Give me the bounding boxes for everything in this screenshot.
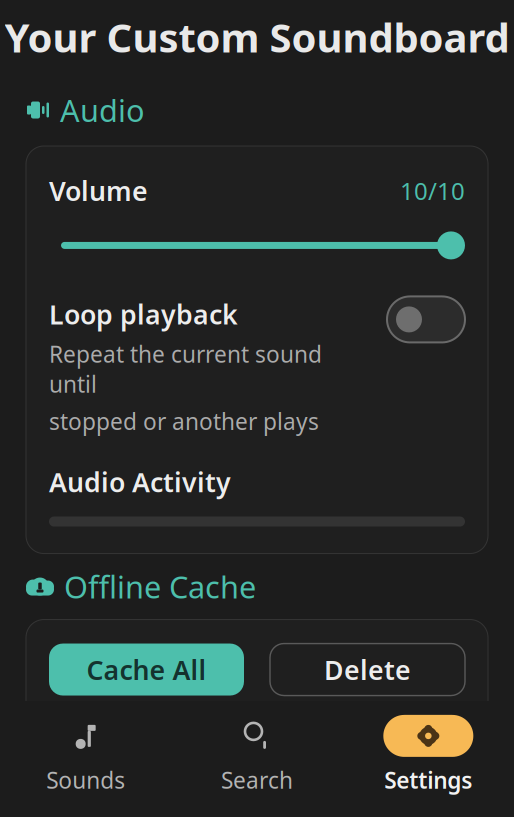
staticText: Sounds <box>46 765 125 795</box>
staticText: Delete <box>324 652 411 687</box>
staticText: Cache All <box>86 652 206 687</box>
staticText: Repeat the current sound until <box>49 339 322 399</box>
staticText: 10/10 <box>400 175 465 207</box>
button[interactable]: Cache All <box>49 643 244 695</box>
staticText: stopped or another plays <box>49 406 319 436</box>
staticText: Loop playback <box>49 296 238 332</box>
staticText: Offline Cache <box>64 566 256 607</box>
staticText: Audio Activity <box>49 464 231 499</box>
staticText: Audio <box>60 90 145 130</box>
staticText: Volume <box>49 173 148 208</box>
button[interactable]: Sounds <box>0 715 171 795</box>
staticText: Search <box>221 765 293 795</box>
staticText: Your Custom Soundboard <box>4 10 509 63</box>
button[interactable]: Search <box>171 715 343 795</box>
button[interactable]: Settings <box>343 715 514 795</box>
staticText: Settings <box>384 765 472 795</box>
button[interactable]: Delete <box>270 643 465 695</box>
button[interactable]: Loop playback toggle, off <box>387 296 465 342</box>
